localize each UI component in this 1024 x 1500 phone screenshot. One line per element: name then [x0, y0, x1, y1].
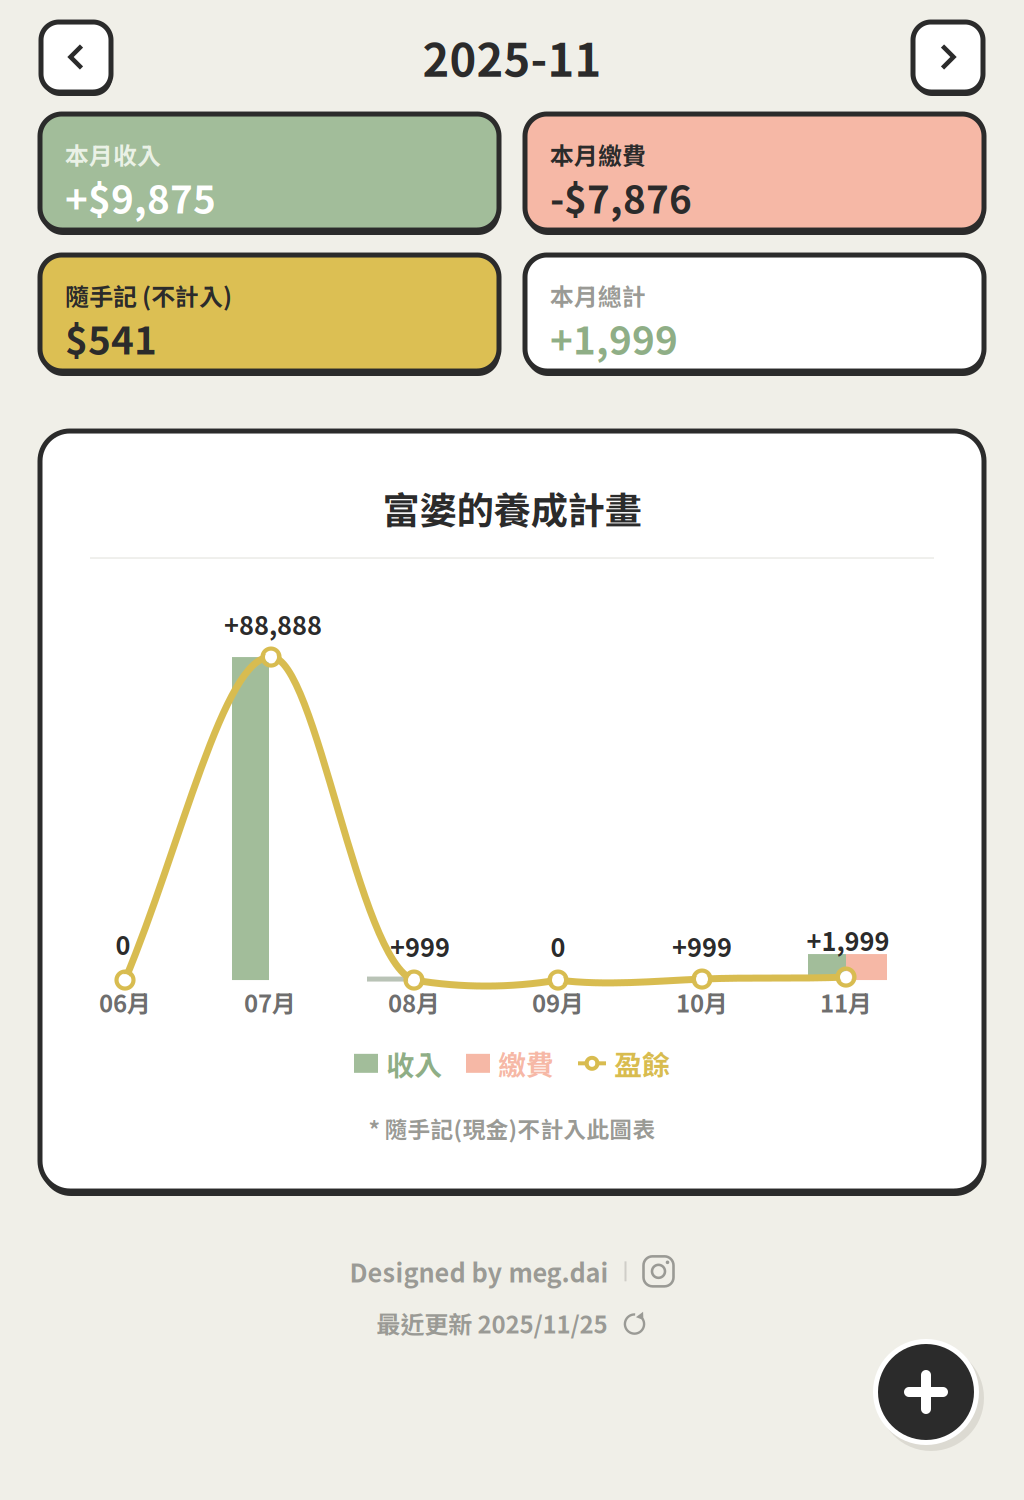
staticText: -$7,876: [550, 169, 692, 225]
staticText: 本月繳費: [550, 137, 646, 172]
staticText: * 隨手記(現金)不計入此圖表: [368, 1112, 655, 1144]
staticText: 盈餘: [614, 1043, 670, 1084]
staticText: 0: [550, 928, 565, 964]
staticText: 隨手記 (不計入): [65, 278, 232, 313]
staticText: +1,999: [550, 310, 678, 366]
button[interactable]: 隨手記 (不計入): [40, 255, 499, 371]
button[interactable]: Instagram: [642, 1255, 674, 1287]
staticText: 09月: [532, 985, 584, 1019]
staticText: 2025-11: [422, 24, 601, 90]
staticText: +$9,875: [65, 169, 216, 225]
staticText: +1,999: [806, 922, 889, 958]
staticText: 10月: [676, 985, 728, 1019]
staticText: 本月收入: [65, 137, 161, 172]
staticText: +88,888: [224, 606, 322, 642]
staticText: 07月: [244, 985, 296, 1019]
button[interactable]: Refresh: [621, 1310, 647, 1336]
button[interactable]: Add entry: [868, 1334, 984, 1450]
button[interactable]: Next month: [913, 22, 983, 92]
staticText: 0: [115, 926, 130, 962]
staticText: 收入: [386, 1043, 442, 1084]
button[interactable]: 本月收入: [40, 114, 499, 230]
button[interactable]: 本月總計: [525, 255, 984, 371]
staticText: Designed by meg.dai: [349, 1253, 608, 1290]
staticText: 08月: [388, 985, 440, 1019]
button[interactable]: 本月繳費: [525, 114, 984, 230]
staticText: $541: [65, 310, 157, 366]
staticText: 富婆的養成計畫: [382, 481, 641, 535]
staticText: 11月: [820, 985, 872, 1019]
staticText: 繳費: [498, 1043, 554, 1084]
staticText: +999: [672, 928, 732, 964]
button[interactable]: Previous month: [41, 22, 111, 92]
staticText: 06月: [99, 985, 151, 1019]
staticText: 最近更新 2025/11/25: [376, 1306, 607, 1340]
staticText: 本月總計: [550, 278, 646, 313]
staticText: +999: [390, 928, 450, 964]
